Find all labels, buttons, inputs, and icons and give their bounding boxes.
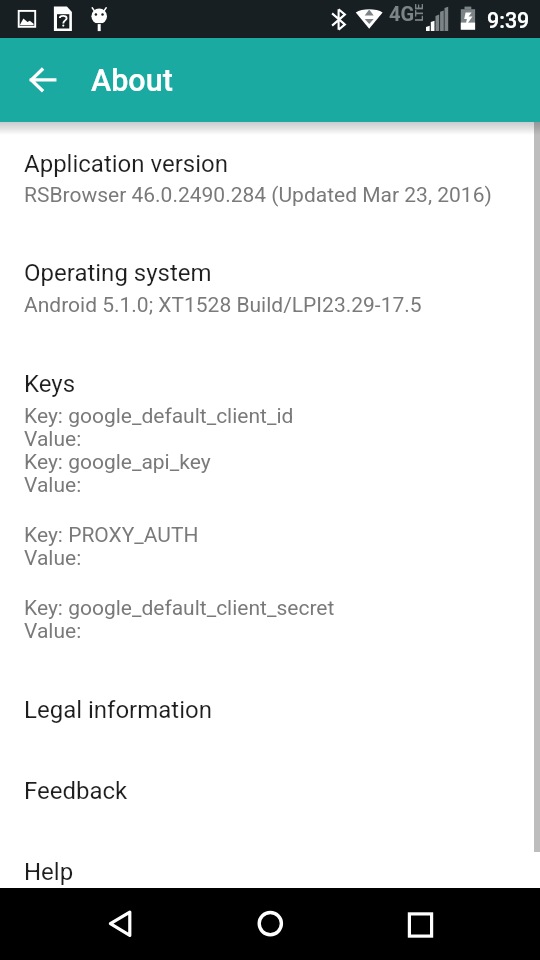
- staticText: Key: google_default_client_id: [24, 404, 294, 429]
- staticText: Legal information: [24, 696, 212, 724]
- staticText: Operating system: [24, 259, 212, 287]
- staticText: Help: [24, 858, 74, 886]
- staticText: Key: google_api_key: [24, 450, 211, 475]
- staticText: Android 5.1.0; XT1528 Build/LPI23.29-17.…: [24, 293, 422, 318]
- button[interactable]: Recent apps: [384, 888, 456, 960]
- staticText: Value:: [24, 473, 82, 498]
- button[interactable]: Feedback: [0, 761, 540, 842]
- staticText: Feedback: [24, 777, 128, 805]
- staticText: LTE: [412, 3, 425, 21]
- staticText: 4G: [389, 2, 415, 25]
- staticText: RSBrowser 46.0.2490.284 (Updated Mar 23,…: [24, 183, 492, 208]
- button[interactable]: Legal information: [0, 680, 540, 761]
- staticText: Application version: [24, 150, 228, 178]
- button[interactable]: Navigate up: [18, 56, 66, 104]
- button[interactable]: Help: [0, 842, 540, 888]
- staticText: About: [91, 63, 173, 99]
- staticText: Key: PROXY_AUTH: [24, 523, 199, 548]
- staticText: Value:: [24, 619, 82, 644]
- staticText: Value:: [24, 427, 82, 452]
- staticText: Value:: [24, 546, 82, 571]
- staticText: Keys: [24, 370, 76, 398]
- button[interactable]: Home: [234, 888, 306, 960]
- button[interactable]: Back: [84, 888, 156, 960]
- staticText: 9:39: [487, 8, 530, 33]
- staticText: Key: google_default_client_secret: [24, 596, 335, 621]
